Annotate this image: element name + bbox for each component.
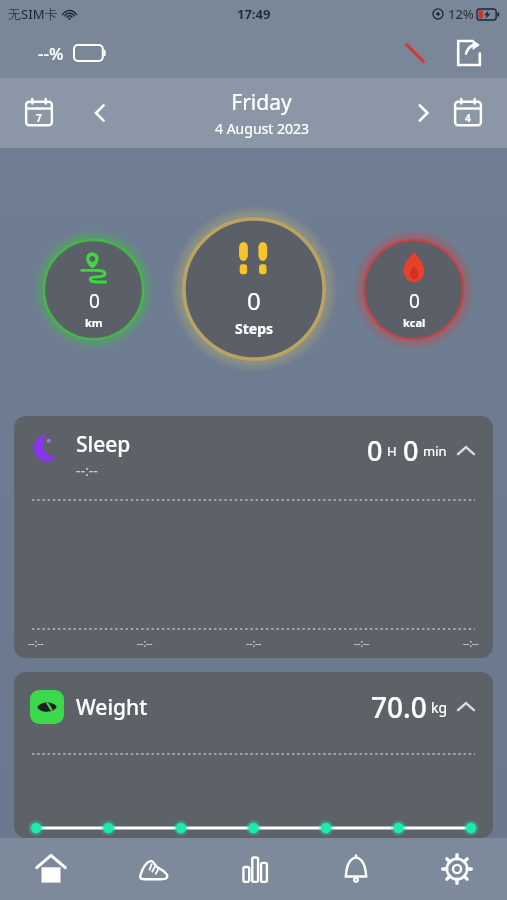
staticText: kg: [431, 698, 448, 717]
staticText: min: [423, 442, 447, 460]
button[interactable]: Share: [447, 31, 491, 75]
button[interactable]: Previous day: [78, 91, 122, 135]
staticText: --:--: [28, 636, 44, 650]
button[interactable]: Next day: [401, 91, 445, 135]
staticText: Weight: [76, 693, 371, 722]
staticText: --%: [38, 42, 64, 65]
staticText: H: [387, 442, 397, 460]
button[interactable]: Collapse sleep: [453, 438, 479, 464]
button[interactable]: Settings: [406, 838, 507, 900]
button[interactable]: 0: [179, 214, 329, 364]
button[interactable]: Home: [0, 838, 102, 900]
staticText: --:--: [137, 636, 153, 650]
staticText: --:--: [246, 636, 262, 650]
staticText: --:--: [354, 636, 370, 650]
button[interactable]: 0: [40, 236, 147, 343]
staticText: 7: [36, 111, 42, 125]
staticText: --:--: [463, 636, 479, 650]
staticText: Steps: [235, 319, 274, 338]
button[interactable]: 0: [360, 236, 467, 343]
staticText: 0: [89, 288, 100, 314]
button[interactable]: Friday: [122, 88, 401, 138]
button[interactable]: Day view: [445, 90, 491, 136]
staticText: 0: [247, 284, 261, 317]
staticText: Friday: [231, 88, 292, 117]
staticText: km: [85, 315, 103, 330]
staticText: 无SIM卡: [8, 5, 58, 23]
staticText: 0: [367, 432, 383, 469]
staticText: kcal: [403, 315, 426, 330]
staticText: 17:49: [237, 5, 271, 23]
staticText: 12%: [448, 5, 474, 23]
button[interactable]: Statistics: [204, 838, 305, 900]
staticText: Sleep: [76, 430, 131, 459]
button[interactable]: Alarms: [305, 838, 406, 900]
staticText: 70.0: [371, 688, 427, 726]
button[interactable]: Week view: [16, 90, 62, 136]
button[interactable]: Activity: [102, 838, 204, 900]
staticText: 4: [465, 111, 471, 125]
staticText: 0: [409, 288, 420, 314]
staticText: 4 August 2023: [215, 119, 309, 138]
button[interactable]: Weight: [14, 672, 493, 838]
button[interactable]: Disconnected: [395, 33, 435, 73]
staticText: --:--: [76, 461, 98, 480]
button[interactable]: Collapse weight: [453, 694, 479, 720]
staticText: 0: [403, 432, 419, 469]
button[interactable]: Sleep: [14, 416, 493, 658]
